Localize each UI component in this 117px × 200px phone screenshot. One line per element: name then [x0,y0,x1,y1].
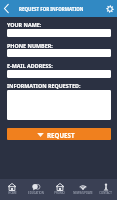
staticText: PROMO [54,191,65,195]
button[interactable]: HOME [0,179,24,200]
button[interactable]: Settings [101,0,117,17]
button[interactable]: CONTACT [94,179,117,200]
button[interactable] [7,29,111,37]
button[interactable]: EDUCATION [24,179,48,200]
staticText: E-MAIL ADDRESS: [7,62,53,69]
button[interactable] [7,70,111,78]
staticText: INFORMATION REQUESTED: [7,82,81,89]
staticText: EDUCATION [28,191,44,195]
staticText: HOME [8,191,17,195]
button[interactable]: Back [0,0,16,17]
staticText: YOUR NAME: [7,21,42,28]
staticText: CONTACT [99,191,112,195]
button[interactable]: PROMO [48,179,71,200]
button[interactable]: NEWS/UPDATE [71,179,94,200]
staticText: NEWS/UPDATE [73,191,93,195]
staticText: PHONE NUMBER: [7,42,53,49]
button[interactable] [7,49,111,57]
staticText: REQUEST FOR INFORMATION [19,6,84,12]
button[interactable]: REQUEST [7,128,111,140]
staticText: REQUEST [47,131,75,139]
